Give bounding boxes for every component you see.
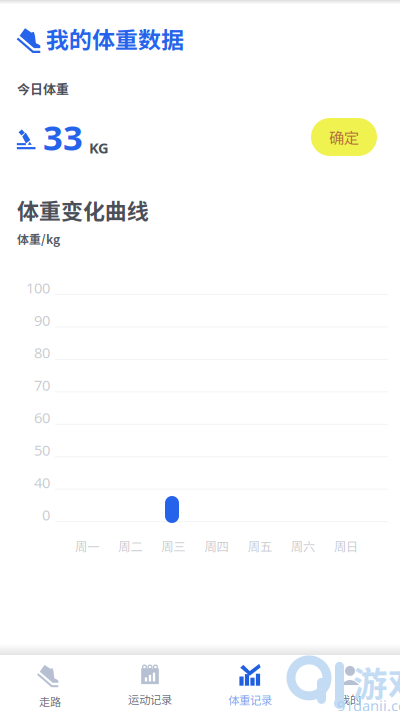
staticText: KG (89, 138, 109, 157)
staticText: 周三 (161, 537, 185, 555)
staticText: 周二 (118, 537, 142, 555)
staticText: 周四 (204, 537, 228, 555)
button[interactable]: 运动记录 (100, 664, 200, 707)
button[interactable]: 体重记录 (200, 663, 300, 708)
staticText: 周日 (334, 537, 358, 555)
staticText: 运动记录 (128, 691, 172, 707)
staticText: 我的体重数据 (46, 22, 184, 55)
staticText: 100 (26, 278, 50, 297)
staticText: 91danji.com (337, 696, 400, 711)
staticText: 体重变化曲线 (17, 194, 149, 226)
staticText: 70 (34, 375, 50, 395)
button[interactable]: 我的 (300, 664, 400, 707)
staticText: 体重记录 (228, 691, 272, 708)
button[interactable]: 走路 (0, 662, 100, 709)
staticText: 60 (34, 408, 50, 427)
staticText: 80 (34, 343, 50, 362)
staticText: 周五 (248, 537, 272, 555)
staticText: 体重/kg (17, 230, 60, 247)
staticText: 0 (42, 505, 50, 525)
staticText: 我的 (339, 691, 361, 707)
staticText: 今日体重 (17, 79, 69, 98)
staticText: 走路 (39, 693, 61, 709)
staticText: 33 (43, 114, 83, 160)
staticText: 90 (34, 310, 50, 330)
staticText: 周一 (75, 537, 99, 555)
staticText: 40 (34, 473, 50, 492)
staticText: 周六 (291, 537, 315, 555)
staticText: 确定 (329, 126, 359, 148)
staticText: 游戏 (353, 657, 400, 707)
staticText: 50 (34, 440, 50, 460)
button[interactable]: 确定 (311, 118, 377, 156)
